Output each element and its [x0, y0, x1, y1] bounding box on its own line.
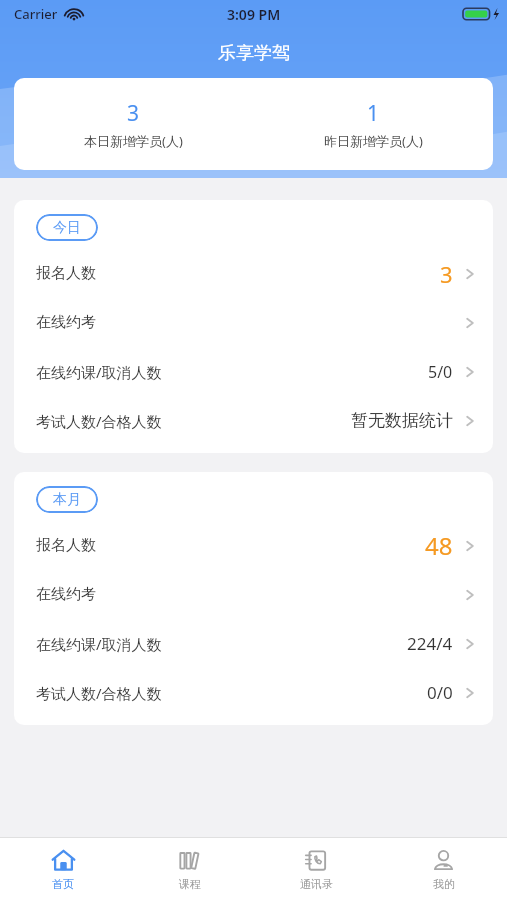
staticText: 暂无数据统计 — [351, 410, 453, 431]
staticText: 1 — [367, 99, 380, 128]
staticText: 乐享学驾 — [218, 42, 290, 65]
staticText: 考试人数/合格人数 — [36, 683, 162, 703]
staticText: 3 — [127, 99, 140, 128]
staticText: 本日新增学员(人) — [84, 132, 183, 150]
staticText: 通讯录 — [300, 877, 333, 891]
staticText: 48 — [425, 529, 453, 562]
button[interactable]: 今日 — [36, 214, 98, 241]
button[interactable]: 考试人数/合格人数 — [14, 668, 493, 717]
staticText: 0/0 — [427, 681, 453, 704]
staticText: 今日 — [53, 219, 81, 237]
button[interactable]: 首页 — [0, 838, 126, 900]
button[interactable]: 本月 — [36, 486, 98, 513]
staticText: 5/0 — [428, 361, 453, 383]
staticText: 报名人数 — [36, 536, 96, 555]
staticText: 在线约课/取消人数 — [36, 634, 162, 654]
staticText: 首页 — [52, 877, 74, 891]
staticText: 昨日新增学员(人) — [324, 132, 423, 150]
staticText: 课程 — [179, 877, 201, 891]
button[interactable]: 在线约考 — [14, 298, 493, 347]
staticText: 报名人数 — [36, 264, 96, 283]
button[interactable]: 通讯录 — [253, 838, 380, 900]
staticText: Carrier — [14, 5, 58, 23]
button[interactable]: 在线约课/取消人数 — [14, 347, 493, 396]
button[interactable]: 报名人数 — [14, 521, 493, 570]
staticText: 在线约考 — [36, 313, 96, 332]
staticText: 考试人数/合格人数 — [36, 411, 162, 431]
staticText: 3:09 PM — [227, 5, 281, 24]
button[interactable]: 1 — [253, 78, 493, 170]
button[interactable]: 在线约考 — [14, 570, 493, 619]
button[interactable]: 我的 — [380, 838, 507, 900]
button[interactable]: 考试人数/合格人数 — [14, 396, 493, 445]
button[interactable]: 在线约课/取消人数 — [14, 619, 493, 668]
button[interactable]: 课程 — [126, 838, 253, 900]
staticText: 224/4 — [407, 632, 453, 655]
staticText: 在线约考 — [36, 585, 96, 604]
button[interactable]: 3 — [14, 78, 253, 170]
staticText: 在线约课/取消人数 — [36, 362, 162, 382]
button[interactable]: 报名人数 — [14, 249, 493, 298]
staticText: 3 — [440, 259, 453, 289]
staticText: 我的 — [433, 877, 455, 891]
staticText: 本月 — [53, 491, 81, 509]
